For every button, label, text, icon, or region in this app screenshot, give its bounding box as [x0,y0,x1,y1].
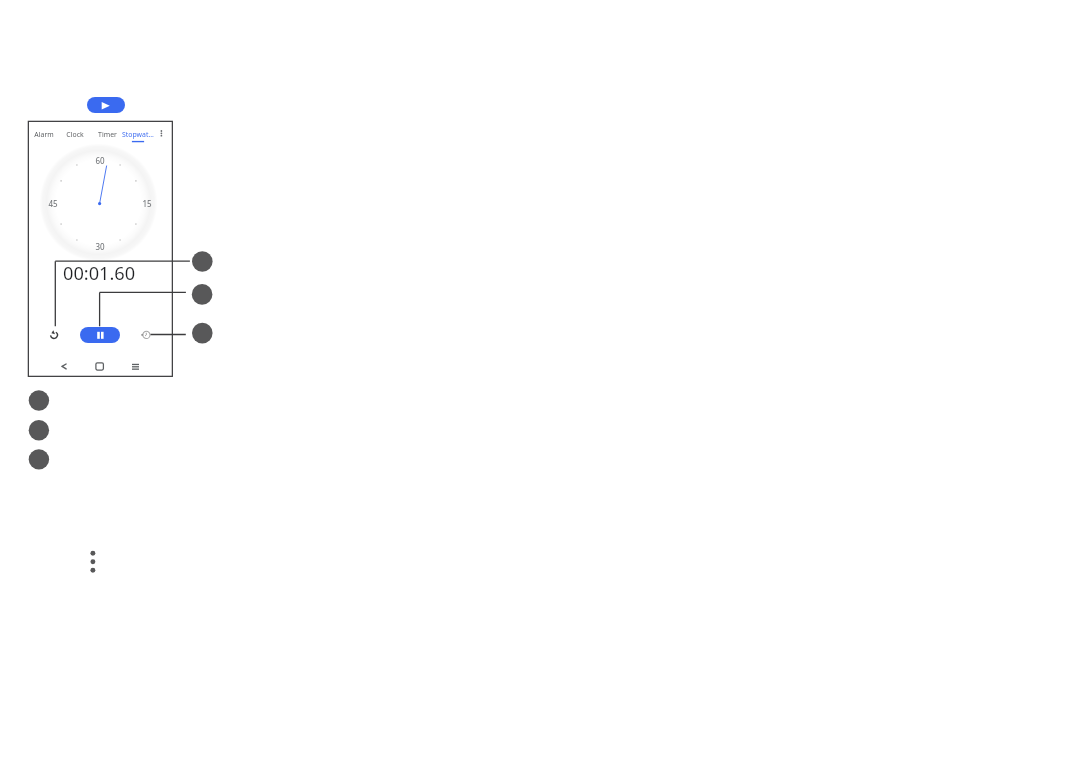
button[interactable]: Clock [47,127,103,141]
button[interactable]: Alarm [16,127,72,141]
staticText: 45 [48,198,58,209]
staticText: Timer [98,130,117,139]
button[interactable]: More options [155,126,168,140]
staticText: 30 [95,241,105,252]
button[interactable]: Stopwat... [110,127,166,141]
staticText: Stopwat... [122,130,154,139]
staticText: Clock [66,130,84,139]
button[interactable]: Lap [139,327,155,343]
staticText: Alarm [34,130,54,139]
staticText: 15 [142,198,152,209]
staticText: 00:01.60 [63,261,136,285]
button[interactable]: Reset [46,327,62,343]
button[interactable]: Back [57,358,73,374]
button[interactable]: Home [91,358,107,374]
button[interactable]: Recent apps [127,358,143,374]
button[interactable]: Timer [79,127,135,141]
button[interactable]: Start stopwatch [87,97,125,113]
button[interactable]: Pause stopwatch [80,327,120,343]
staticText: 60 [95,155,105,166]
